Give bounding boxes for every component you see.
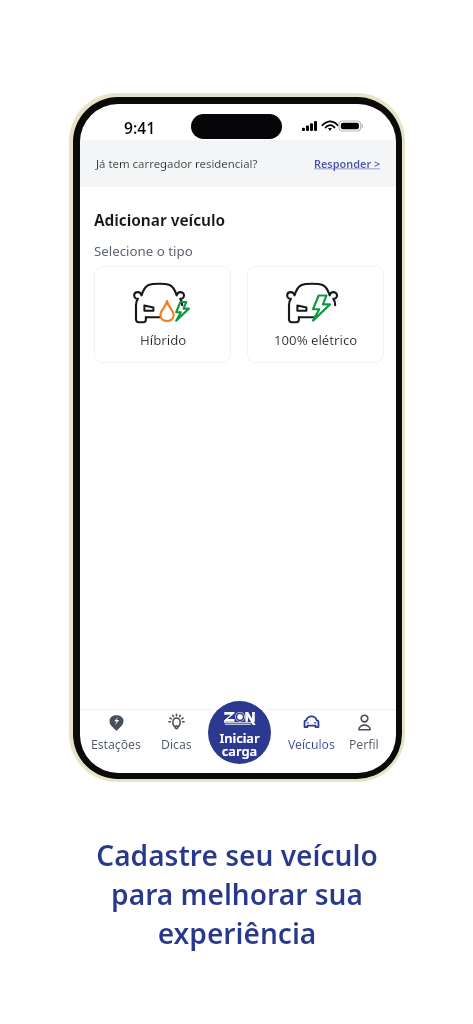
staticText: Dicas	[161, 736, 192, 753]
button[interactable]: Perfil	[335, 714, 393, 753]
staticText: 100% elétrico	[274, 331, 358, 349]
button[interactable]: Dicas	[147, 714, 205, 753]
staticText: Responder >	[314, 156, 381, 171]
staticText: Iniciar carga	[219, 729, 260, 760]
button[interactable]: Iniciar carga	[208, 701, 271, 764]
button[interactable]: 100% elétrico	[247, 266, 384, 363]
staticText: Perfil	[349, 736, 379, 753]
staticText: Estações	[91, 736, 141, 753]
staticText: Selecione o tipo	[94, 242, 193, 260]
staticText: Híbrido	[140, 331, 187, 349]
button[interactable]: Já tem carregador residencial?	[80, 140, 396, 187]
button[interactable]: Veículos	[282, 714, 340, 753]
staticText: Cadastre seu veículo para melhorar sua e…	[96, 836, 378, 952]
staticText: Adicionar veículo	[94, 210, 226, 231]
staticText: Já tem carregador residencial?	[96, 156, 258, 172]
button[interactable]: Híbrido	[94, 266, 231, 363]
button[interactable]: Estações	[87, 714, 145, 753]
staticText: 9:41	[124, 117, 156, 138]
staticText: Veículos	[288, 736, 335, 753]
